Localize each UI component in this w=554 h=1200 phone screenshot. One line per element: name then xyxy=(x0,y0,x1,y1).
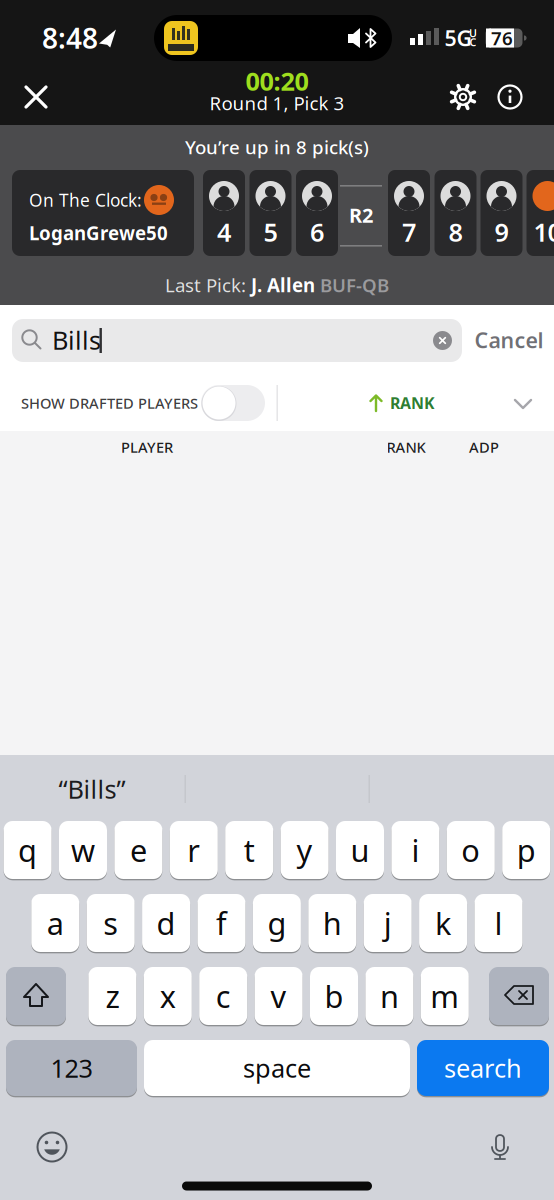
button[interactable]: t xyxy=(225,820,273,880)
staticText: PLAYER xyxy=(121,437,173,457)
button[interactable]: search xyxy=(417,1039,549,1097)
staticText: u xyxy=(350,830,369,870)
staticText: 123 xyxy=(50,1051,92,1085)
staticText: RANK xyxy=(390,392,435,414)
button[interactable]: “Bills” xyxy=(32,769,152,809)
staticText: r xyxy=(187,830,200,870)
button[interactable]: Pick 4 xyxy=(203,170,245,256)
button[interactable]: u xyxy=(336,820,384,880)
button[interactable]: Pick 9 xyxy=(480,170,522,256)
staticText: 10 xyxy=(533,215,554,249)
staticText: search xyxy=(444,1051,522,1085)
button[interactable]: v xyxy=(255,966,303,1026)
staticText: 6 xyxy=(310,215,324,249)
staticText: Round 1, Pick 3 xyxy=(209,91,344,115)
button[interactable]: Search xyxy=(12,319,462,362)
staticText: q xyxy=(18,830,37,870)
button[interactable]: Sort by rank xyxy=(347,388,457,418)
staticText: 5G xyxy=(444,24,471,52)
button[interactable]: y xyxy=(281,820,329,880)
button[interactable]: Close xyxy=(19,80,53,114)
staticText: j xyxy=(384,903,392,943)
button[interactable]: s xyxy=(87,893,135,953)
button[interactable]: Shift xyxy=(6,966,66,1026)
button[interactable]: Show drafted players xyxy=(201,385,265,421)
button[interactable]: g xyxy=(253,893,301,953)
button[interactable]: q xyxy=(4,820,52,880)
button[interactable]: Pick 6 xyxy=(296,170,338,256)
staticText: 9 xyxy=(494,215,508,249)
staticText: b xyxy=(324,976,343,1016)
button[interactable]: Cancel xyxy=(454,318,554,361)
staticText: “Bills” xyxy=(58,772,125,806)
button[interactable]: l xyxy=(474,893,522,953)
staticText: d xyxy=(157,903,176,943)
staticText: C xyxy=(469,35,476,49)
button[interactable]: h xyxy=(308,893,356,953)
button[interactable]: Emoji xyxy=(32,1127,72,1167)
staticText: BUF-QB xyxy=(315,273,389,297)
button[interactable]: Pick 5 xyxy=(249,170,291,256)
staticText: LoganGrewe50 xyxy=(29,221,168,245)
button[interactable]: 123 xyxy=(6,1039,137,1097)
staticText: 8 xyxy=(448,215,462,249)
button[interactable]: Info xyxy=(493,80,527,114)
staticText: J. Allen xyxy=(251,273,315,297)
staticText: RANK xyxy=(386,437,425,457)
button[interactable]: z xyxy=(88,966,136,1026)
button[interactable]: k xyxy=(419,893,467,953)
staticText: 4 xyxy=(217,215,231,249)
staticText: e xyxy=(130,830,147,870)
staticText: i xyxy=(411,830,419,870)
staticText: f xyxy=(216,903,227,943)
button[interactable]: Settings xyxy=(446,80,480,114)
button[interactable]: x xyxy=(144,966,192,1026)
staticText: Bills xyxy=(52,323,101,357)
button[interactable]: m xyxy=(421,966,469,1026)
button[interactable]: Dictation xyxy=(480,1127,520,1167)
staticText: 00:20 xyxy=(245,64,308,98)
staticText: c xyxy=(216,976,231,1016)
button[interactable]: p xyxy=(502,820,550,880)
staticText: m xyxy=(430,976,459,1016)
button[interactable]: b xyxy=(310,966,358,1026)
button[interactable]: w xyxy=(59,820,107,880)
staticText: R2 xyxy=(349,202,373,228)
staticText: 5 xyxy=(263,215,277,249)
button[interactable]: a xyxy=(31,893,79,953)
button[interactable]: Pick 8 xyxy=(434,170,476,256)
staticText: 8:48 xyxy=(42,19,98,57)
staticText: 7 xyxy=(402,215,416,249)
staticText: x xyxy=(160,976,176,1016)
staticText: h xyxy=(323,903,342,943)
staticText: k xyxy=(435,903,451,943)
button[interactable]: e xyxy=(114,820,162,880)
button[interactable]: Clear text xyxy=(433,331,452,350)
staticText: SHOW DRAFTED PLAYERS xyxy=(21,393,198,413)
staticText: t xyxy=(244,830,255,870)
button[interactable]: n xyxy=(365,966,413,1026)
staticText: Cancel xyxy=(474,326,543,354)
button[interactable]: f xyxy=(197,893,245,953)
button[interactable]: i xyxy=(391,820,439,880)
button[interactable]: Expand sort options xyxy=(513,397,533,411)
staticText: s xyxy=(103,903,118,943)
staticText: v xyxy=(271,976,287,1016)
staticText: 76 xyxy=(491,26,513,50)
staticText: On The Clock: xyxy=(29,188,142,211)
button[interactable]: d xyxy=(142,893,190,953)
button[interactable]: Pick 10 xyxy=(526,170,554,256)
button[interactable]: c xyxy=(199,966,247,1026)
staticText: You’re up in 8 pick(s) xyxy=(185,135,369,159)
button[interactable]: space xyxy=(144,1039,410,1097)
button[interactable]: j xyxy=(364,893,412,953)
staticText: g xyxy=(267,903,286,943)
button[interactable]: r xyxy=(170,820,218,880)
staticText: U xyxy=(469,26,477,40)
button[interactable]: Delete xyxy=(489,966,549,1026)
button[interactable]: o xyxy=(447,820,495,880)
staticText: a xyxy=(47,903,64,943)
staticText: ADP xyxy=(469,437,499,457)
button[interactable]: Pick 7 xyxy=(388,170,430,256)
staticText: p xyxy=(517,830,536,870)
